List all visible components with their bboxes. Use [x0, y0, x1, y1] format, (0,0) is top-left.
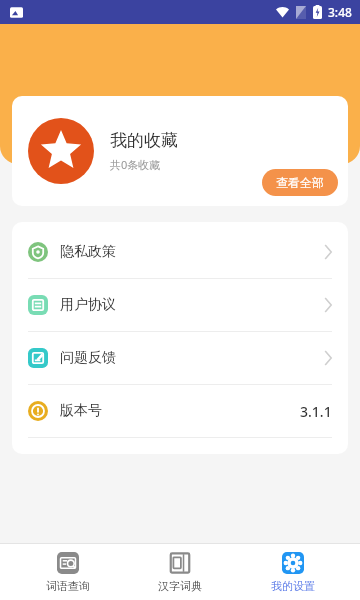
button[interactable]: 问题反馈 [12, 332, 348, 384]
staticText: 版本号 [60, 402, 102, 420]
staticText: 3:48 [328, 4, 352, 20]
staticText: 3.1.1 [300, 402, 332, 421]
button[interactable]: 隐私政策 [12, 226, 348, 278]
staticText: 我的设置 [271, 579, 315, 593]
button[interactable]: 汉字词典 [135, 548, 225, 597]
staticText: 隐私政策 [60, 243, 116, 261]
staticText: 查看全部 [276, 175, 324, 190]
staticText: 用户协议 [60, 296, 116, 314]
staticText: 词语查询 [46, 579, 90, 593]
button[interactable]: 我的设置 [248, 548, 338, 597]
staticText: 我的收藏 [110, 130, 178, 151]
staticText: 共0条收藏 [110, 157, 161, 172]
button[interactable]: 用户协议 [12, 279, 348, 331]
staticText: 问题反馈 [60, 349, 116, 367]
button[interactable]: 查看全部 [262, 169, 338, 196]
button[interactable]: 版本号 [12, 385, 348, 437]
button[interactable]: 词语查询 [23, 548, 113, 597]
staticText: 汉字词典 [158, 579, 202, 593]
